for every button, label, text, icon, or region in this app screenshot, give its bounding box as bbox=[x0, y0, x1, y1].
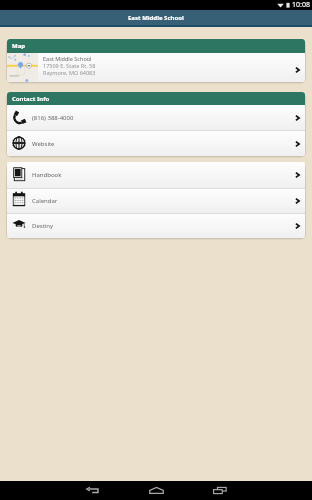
staticText: 17509 E. State Rt. 58 Raymore, MO 64083 bbox=[43, 62, 96, 76]
button[interactable]: Destiny bbox=[7, 214, 305, 238]
staticText: Map bbox=[12, 42, 26, 50]
staticText: Destiny bbox=[32, 222, 54, 230]
staticText: Calendar bbox=[32, 197, 58, 205]
button[interactable]: Home bbox=[131, 481, 181, 500]
button[interactable]: Website bbox=[7, 131, 305, 156]
staticText: Website bbox=[32, 140, 55, 148]
button[interactable]: Handbook bbox=[7, 162, 305, 188]
button[interactable]: (816) 388-4000 bbox=[7, 105, 305, 130]
button[interactable]: Calendar bbox=[7, 189, 305, 213]
staticText: 10:08 bbox=[292, 0, 310, 10]
staticText: Handbook bbox=[32, 171, 62, 179]
button[interactable]: Recent apps bbox=[195, 481, 245, 500]
button[interactable]: Back bbox=[67, 481, 117, 500]
staticText: Contact Info bbox=[12, 95, 50, 103]
staticText: East Middle School bbox=[43, 55, 92, 62]
staticText: East Middle School bbox=[128, 14, 184, 22]
staticText: (816) 388-4000 bbox=[32, 114, 74, 122]
button[interactable]: East Middle School bbox=[7, 53, 305, 82]
